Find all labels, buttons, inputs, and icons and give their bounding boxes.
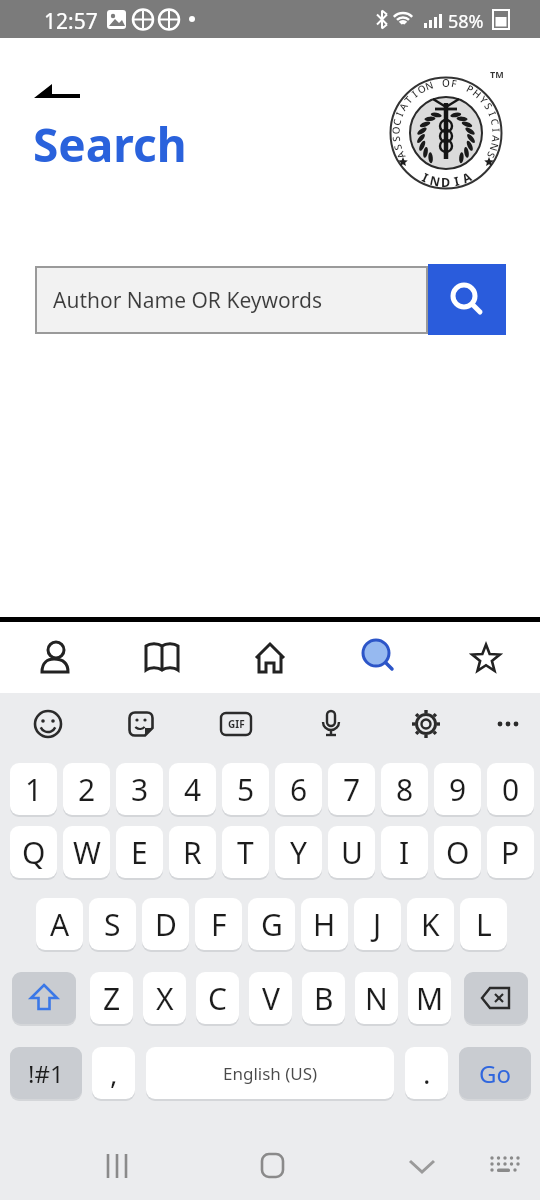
button[interactable]: , [92,1047,135,1099]
button[interactable] [484,700,532,748]
button[interactable] [402,700,450,748]
staticText: 12:57 [44,7,98,36]
button[interactable]: J [354,898,401,950]
button[interactable] [117,700,165,748]
staticText: L [476,904,492,945]
staticText: V [262,978,280,1019]
button[interactable]: A [36,898,83,950]
staticText: C [208,978,227,1019]
button[interactable]: 4 [169,763,216,815]
button[interactable]: O [434,826,481,878]
button[interactable]: X [143,972,186,1024]
staticText: D [155,904,177,945]
button[interactable]: 3 [116,763,163,815]
staticText: 4 [184,769,202,810]
staticText: GIF [228,717,245,731]
staticText: O [446,832,470,873]
button[interactable]: R [169,826,216,878]
staticText: R [183,832,202,873]
staticText: X [156,978,174,1019]
button[interactable]: 9 [434,763,481,815]
button[interactable] [108,622,216,693]
staticText: Go [479,1057,511,1090]
button[interactable]: G [248,898,295,950]
staticText: F [211,904,227,945]
button[interactable]: P [487,826,534,878]
button[interactable]: 2 [63,763,110,815]
button[interactable]: T [222,826,269,878]
button[interactable]: English (US) [146,1047,394,1099]
staticText: Y [290,832,307,873]
staticText: . [423,1054,431,1092]
staticText: E [131,832,148,873]
staticText: 6 [290,769,308,810]
button[interactable] [12,972,76,1024]
staticText: K [421,904,440,945]
button[interactable]: E [116,826,163,878]
staticText: !#1 [28,1057,64,1090]
staticText: 7 [343,769,361,810]
button[interactable] [307,700,355,748]
button[interactable]: F [195,898,242,950]
button[interactable] [324,622,432,693]
staticText: 3 [131,769,149,810]
staticText: W [73,832,101,873]
button[interactable] [216,622,324,693]
button[interactable] [432,622,540,693]
button[interactable]: B [302,972,345,1024]
button[interactable]: U [328,826,375,878]
staticText: English (US) [223,1062,318,1085]
staticText: TM [490,68,504,80]
staticText: 58% [448,9,484,34]
button[interactable]: GIF [212,700,260,748]
staticText: 0 [502,769,520,810]
staticText: N [365,978,388,1019]
staticText: P [501,832,520,873]
button[interactable]: D [142,898,189,950]
staticText: 2 [78,769,96,810]
staticText: Author Name OR Keywords [53,286,322,315]
button[interactable] [96,1142,144,1190]
staticText: A [50,904,70,945]
button[interactable]: 5 [222,763,269,815]
button[interactable]: 6 [275,763,322,815]
button[interactable]: . [405,1047,448,1099]
staticText: Search [33,113,187,176]
staticText: S [104,904,121,945]
button[interactable]: I [381,826,428,878]
button[interactable]: Z [90,972,133,1024]
button[interactable]: N [355,972,398,1024]
button[interactable]: Q [10,826,57,878]
button[interactable] [24,700,72,748]
button[interactable]: Go [459,1047,531,1099]
button[interactable] [249,1142,297,1190]
button[interactable] [0,622,108,693]
button[interactable]: 8 [381,763,428,815]
button[interactable]: 1 [10,763,57,815]
button[interactable] [24,74,88,106]
button[interactable]: H [301,898,348,950]
button[interactable]: V [249,972,292,1024]
button[interactable]: K [407,898,454,950]
button[interactable]: !#1 [10,1047,82,1099]
button[interactable] [398,1142,446,1190]
staticText: M [416,978,444,1019]
staticText: 8 [396,769,414,810]
button[interactable]: Author Name OR Keywords [35,266,428,334]
staticText: 5 [237,769,255,810]
button[interactable] [481,1142,529,1190]
button[interactable]: L [460,898,507,950]
staticText: , [110,1054,118,1092]
staticText: 1 [25,769,43,810]
button[interactable]: W [63,826,110,878]
button[interactable]: Y [275,826,322,878]
staticText: B [314,978,334,1019]
button[interactable] [428,264,506,335]
staticText: Q [22,832,46,873]
button[interactable]: S [89,898,136,950]
button[interactable]: 0 [487,763,534,815]
button[interactable] [464,972,528,1024]
button[interactable]: 7 [328,763,375,815]
button[interactable]: C [196,972,239,1024]
button[interactable]: M [408,972,451,1024]
